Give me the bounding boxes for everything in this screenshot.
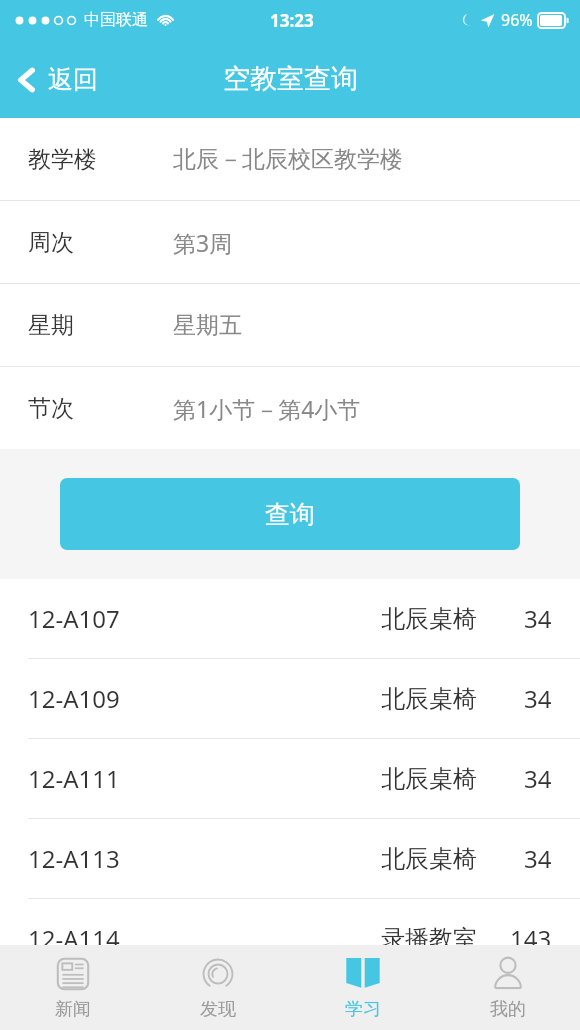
staticText: 北辰桌椅 [381, 604, 477, 634]
staticText: 星期五 [173, 311, 242, 340]
staticText: 教学楼 [28, 145, 97, 174]
button[interactable]: 12-A109 [0, 659, 580, 739]
staticText: 34 [524, 602, 552, 635]
button[interactable]: 返回 [0, 56, 114, 103]
button[interactable]: 12-A116 [0, 979, 580, 1030]
staticText: 34 [524, 842, 552, 875]
button[interactable]: 发现 [145, 949, 290, 1027]
staticText: 第1小节－第4小节 [173, 393, 361, 424]
staticText: 143 [510, 922, 552, 955]
button[interactable]: 查询 [60, 478, 520, 550]
staticText: 96% [501, 9, 533, 31]
staticText: 北辰桌椅 [381, 684, 477, 714]
button[interactable]: 12-A107 [0, 579, 580, 659]
button[interactable]: 星期 [0, 284, 580, 367]
staticText: 北辰－北辰校区教学楼 [173, 145, 403, 174]
staticText: 12-A116 [28, 988, 120, 1021]
other: 学习 [344, 955, 382, 993]
staticText: 新闻 [55, 998, 91, 1021]
staticText: 录播教室 [381, 924, 477, 954]
button[interactable]: 12-A113 [0, 819, 580, 899]
staticText: 中国联通 [84, 10, 148, 30]
button[interactable]: 学习 [290, 949, 435, 1027]
staticText: 发现 [200, 998, 236, 1021]
button[interactable]: 12-A111 [0, 739, 580, 819]
button[interactable]: 我的 [435, 949, 580, 1027]
staticText: 我的 [490, 998, 526, 1021]
staticText: 34 [524, 988, 552, 1021]
other: 新闻 [54, 955, 92, 993]
button[interactable]: 教学楼 [0, 118, 580, 201]
staticText: 北辰桌椅 [381, 844, 477, 874]
staticText: 北辰桌椅 [381, 764, 477, 794]
button[interactable]: 周次 [0, 201, 580, 284]
button[interactable]: 新闻 [0, 949, 145, 1027]
other: 发现 [199, 955, 237, 993]
staticText: 空教室查询 [223, 62, 358, 96]
staticText: 节次 [28, 394, 74, 423]
staticText: 12-A111 [28, 762, 120, 795]
staticText: 34 [524, 682, 552, 715]
staticText: 学习 [345, 998, 381, 1021]
staticText: 星期 [28, 311, 74, 340]
staticText: 周次 [28, 228, 74, 257]
staticText: 13:23 [270, 9, 314, 32]
staticText: 34 [524, 762, 552, 795]
staticText: 12-A109 [28, 682, 120, 715]
staticText: 12-A113 [28, 842, 120, 875]
other: 我的 [489, 955, 527, 993]
staticText: 返回 [48, 64, 98, 95]
button[interactable]: 12-A114 [0, 899, 580, 979]
button[interactable]: 节次 [0, 367, 580, 449]
staticText: 12-A107 [28, 602, 120, 635]
staticText: 第3周 [173, 227, 233, 258]
staticText: 查询 [265, 499, 315, 530]
staticText: 12-A114 [28, 922, 120, 955]
